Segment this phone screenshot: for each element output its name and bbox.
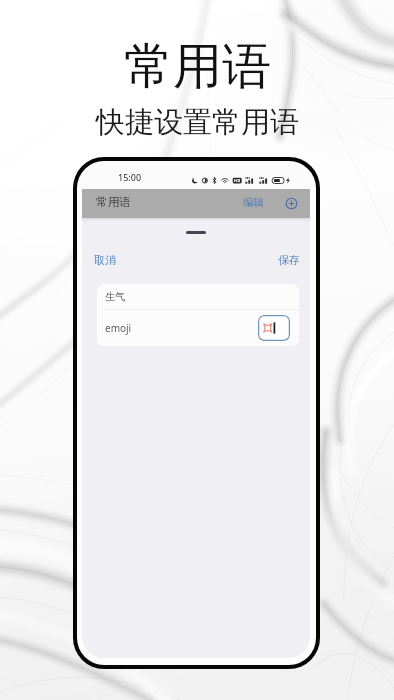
staticText: 生气 xyxy=(105,290,125,303)
staticText: 常用语 xyxy=(96,195,132,210)
staticText: 编辑 xyxy=(243,196,264,209)
button[interactable]: 编辑 xyxy=(241,194,266,211)
button[interactable]: Drag handle xyxy=(82,226,310,238)
button[interactable]: 生气 xyxy=(97,284,299,309)
staticText: 15:00 xyxy=(118,171,142,183)
button[interactable]: Add phrase xyxy=(285,197,298,210)
button[interactable]: emoji xyxy=(97,310,299,346)
staticText: 保存 xyxy=(278,253,300,267)
button[interactable]: 保存 xyxy=(276,251,302,269)
button[interactable]: Emoji input xyxy=(258,315,290,341)
staticText: 快捷设置常用语 xyxy=(96,104,299,141)
staticText: emoji xyxy=(105,321,132,335)
staticText: 取消 xyxy=(94,253,116,267)
staticText: 常用语 xyxy=(124,36,271,98)
button[interactable]: 取消 xyxy=(92,251,118,269)
